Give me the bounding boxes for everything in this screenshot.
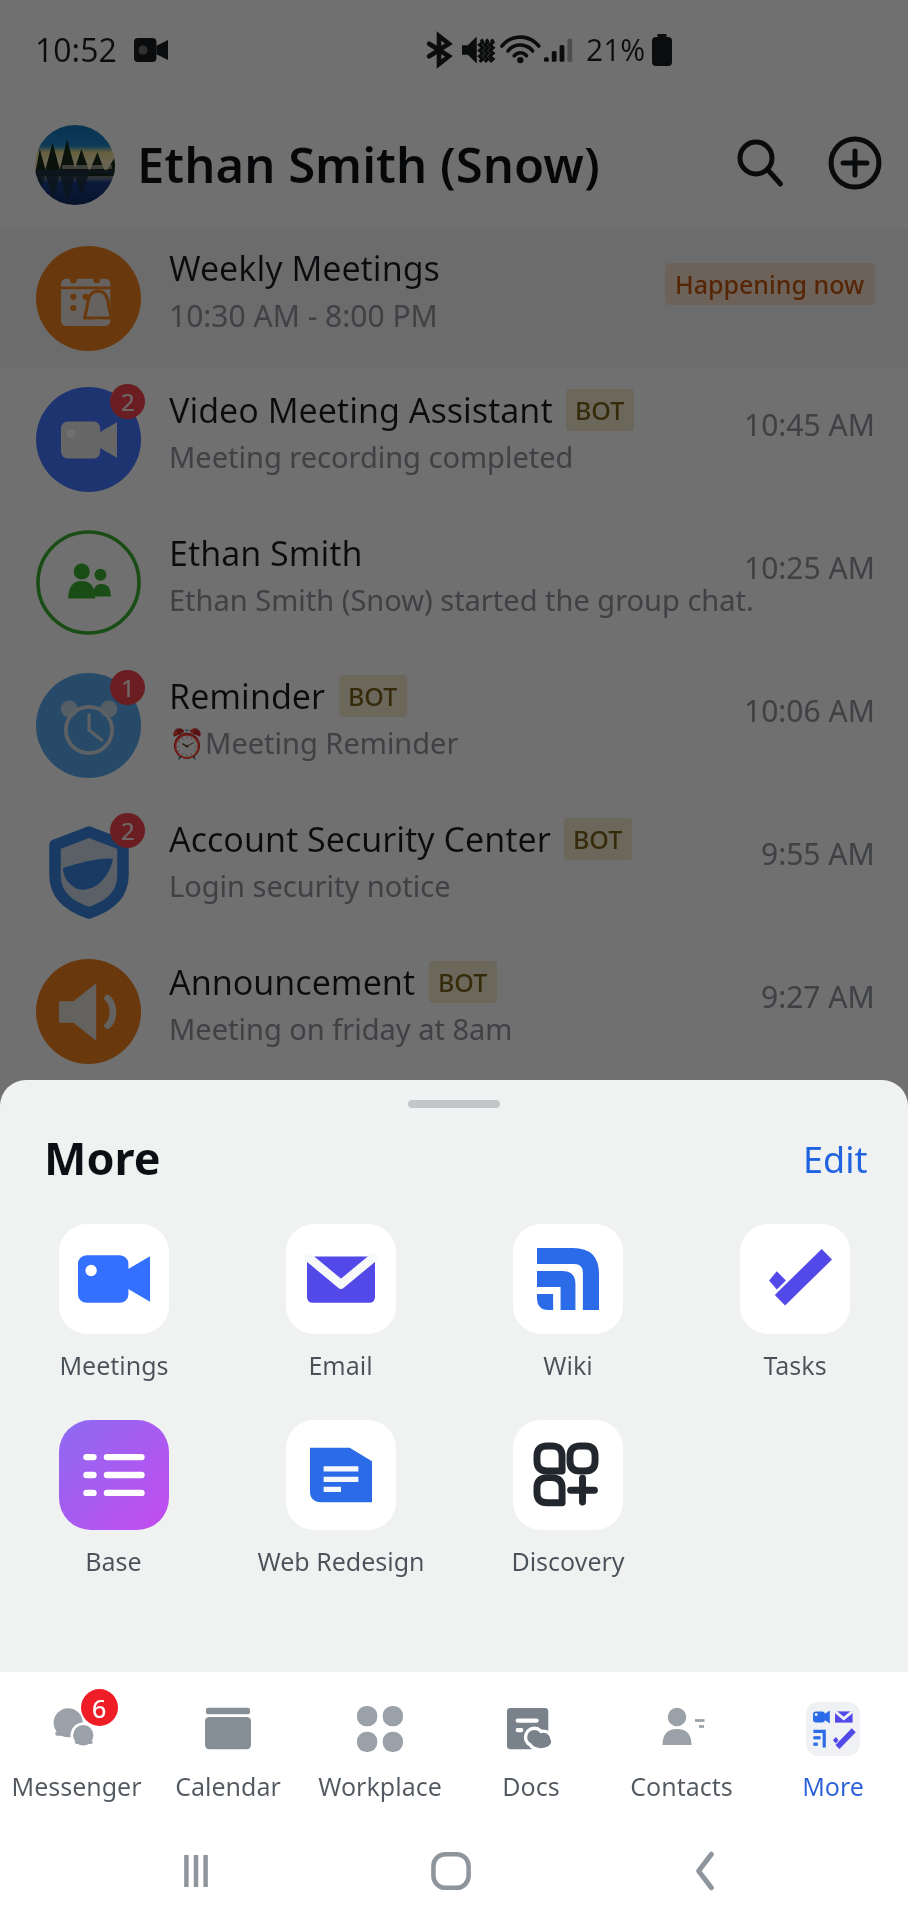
button[interactable]: Ethan Smith <box>0 511 908 654</box>
button[interactable]: More <box>757 1672 908 1822</box>
button[interactable]: Docs <box>455 1672 606 1822</box>
button[interactable]: Contacts <box>606 1672 757 1822</box>
staticText: BOT <box>438 965 488 999</box>
staticText: Messenger <box>11 1769 142 1803</box>
staticText: ⏰Meeting Reminder <box>169 723 459 762</box>
staticText: Weekly Meetings <box>169 245 440 291</box>
staticText: Ethan Smith <box>169 530 363 576</box>
button[interactable]: 2 <box>0 368 908 511</box>
staticText: Happening now <box>675 267 865 301</box>
staticText: Base <box>85 1544 142 1578</box>
button[interactable]: Home <box>415 1835 487 1907</box>
staticText: Email <box>308 1348 373 1382</box>
staticText: Video Meeting Assistant <box>169 387 553 433</box>
button[interactable]: 6 <box>0 1672 152 1822</box>
staticText: More <box>802 1769 864 1803</box>
staticText: Calendar <box>175 1769 281 1803</box>
button[interactable]: 1 <box>0 654 908 797</box>
button[interactable]: Discovery <box>454 1420 681 1578</box>
staticText: 10:52 <box>35 28 117 72</box>
button[interactable]: Edit <box>763 1127 908 1183</box>
staticText: BOT <box>348 679 398 713</box>
staticText: 10:30 AM - 8:00 PM <box>169 295 438 336</box>
staticText: Wiki <box>543 1348 593 1382</box>
button[interactable]: Search <box>716 122 802 208</box>
button[interactable]: Weekly Meetings <box>0 228 908 368</box>
staticText: Meetings <box>59 1348 169 1382</box>
button[interactable]: Recent apps <box>160 1835 232 1907</box>
staticText: Web Redesign <box>257 1544 425 1578</box>
staticText: BOT <box>575 393 625 427</box>
staticText: Discovery <box>511 1544 625 1578</box>
staticText: Meeting on friday at 8am <box>169 1009 513 1048</box>
staticText: 10:06 AM <box>744 690 875 731</box>
staticText: More <box>44 1127 161 1183</box>
button[interactable]: Add <box>812 122 898 208</box>
staticText: 10:25 AM <box>744 547 875 588</box>
staticText: Workplace <box>318 1769 442 1803</box>
button[interactable]: Announcement <box>0 940 908 1083</box>
staticText: Reminder <box>169 673 326 719</box>
button[interactable]: Base <box>0 1420 227 1578</box>
staticText: 6 <box>92 1691 107 1725</box>
staticText: Login security notice <box>169 866 451 905</box>
button[interactable]: Tasks <box>681 1224 908 1382</box>
staticText: 2 <box>121 385 135 418</box>
staticText: Docs <box>502 1769 560 1803</box>
staticText: 9:55 AM <box>761 833 875 874</box>
button[interactable]: Back <box>669 1835 741 1907</box>
staticText: Ethan Smith (Snow) <box>137 131 600 198</box>
staticText: Meeting recording completed <box>169 437 574 476</box>
staticText: 10:45 AM <box>744 404 875 445</box>
staticText: 21% <box>586 29 646 70</box>
staticText: BOT <box>573 822 623 856</box>
staticText: 9:27 AM <box>761 976 875 1017</box>
staticText: Ethan Smith (Snow) started the group cha… <box>169 580 754 619</box>
staticText: Account Security Center <box>169 816 551 862</box>
staticText: Contacts <box>630 1769 733 1803</box>
staticText: Tasks <box>763 1348 827 1382</box>
button[interactable]: Wiki <box>454 1224 681 1382</box>
button[interactable]: Email <box>227 1224 454 1382</box>
button[interactable]: Calendar <box>152 1672 304 1822</box>
staticText: Edit <box>803 1135 868 1175</box>
button[interactable]: Workplace <box>304 1672 455 1822</box>
button[interactable]: Web Redesign <box>227 1420 454 1578</box>
staticText: Announcement <box>169 959 416 1005</box>
staticText: 1 <box>121 671 135 704</box>
staticText: 2 <box>121 814 135 847</box>
button[interactable]: 2 <box>0 797 908 940</box>
button[interactable]: Meetings <box>0 1224 227 1382</box>
